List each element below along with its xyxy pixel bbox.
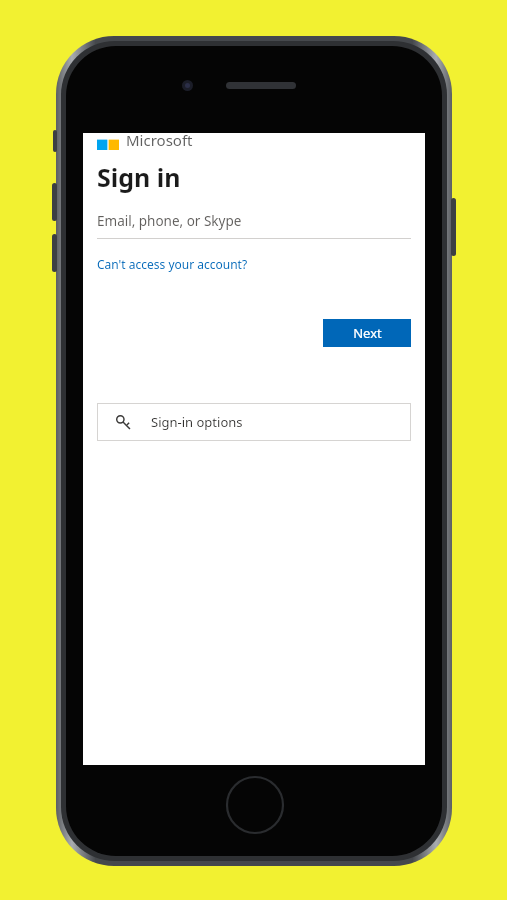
button[interactable]: Can't access your account? — [97, 256, 248, 272]
button[interactable]: Power — [451, 198, 456, 256]
button[interactable]: Next — [323, 319, 411, 347]
staticText: Sign in — [97, 160, 181, 194]
staticText: Email, phone, or Skype — [97, 212, 242, 230]
button[interactable]: Home — [226, 776, 284, 834]
staticText: Microsoft — [126, 130, 193, 147]
button[interactable]: Sign-in options — [97, 403, 411, 441]
button[interactable]: Email, phone, or Skype — [97, 212, 411, 239]
staticText: Next — [353, 324, 382, 342]
staticText: Sign-in options — [151, 413, 243, 431]
button[interactable]: Volume down — [52, 234, 57, 272]
staticText: Can't access your account? — [97, 256, 248, 272]
button[interactable]: Volume up — [52, 183, 57, 221]
button[interactable]: Ring silent switch — [53, 130, 57, 152]
